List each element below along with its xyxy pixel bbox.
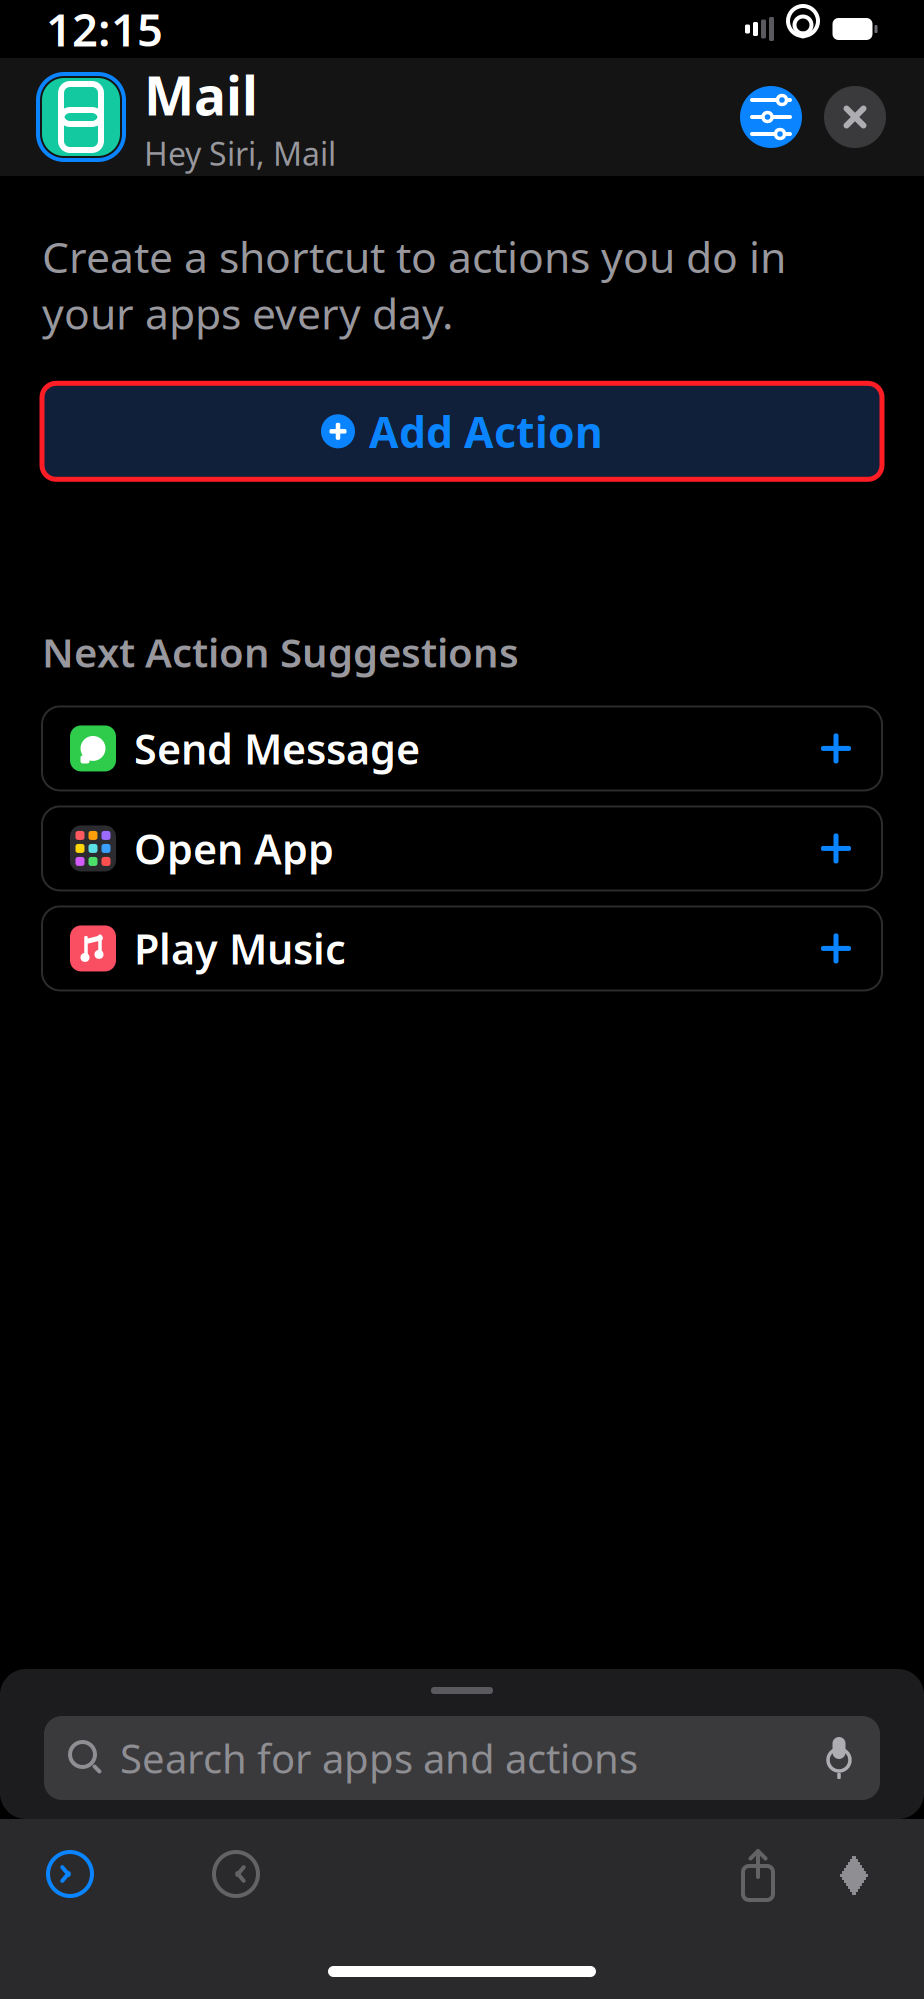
staticText: Play Music (134, 921, 346, 976)
button[interactable]: Share (710, 1839, 806, 1909)
staticText: 12:15 (46, 0, 163, 59)
button[interactable]: Open App (42, 806, 882, 890)
button[interactable]: Search for apps and actions (44, 1716, 880, 1800)
staticText: Hey Siri, Mail (144, 132, 336, 175)
staticText: Mail (144, 59, 258, 130)
button[interactable]: Run shortcut (806, 1839, 902, 1909)
button[interactable]: Shortcut settings (740, 86, 802, 148)
staticText: Send Message (134, 721, 420, 776)
staticText: Search for apps and actions (120, 1731, 638, 1784)
staticText: Next Action Suggestions (42, 625, 519, 678)
staticText: Create a shortcut to actions you do in y… (42, 228, 786, 341)
button[interactable]: Close (824, 86, 886, 148)
button[interactable]: Redo (188, 1839, 284, 1909)
button[interactable]: Play Music (42, 906, 882, 990)
button[interactable]: Undo (22, 1839, 118, 1909)
staticText: Add Action (369, 403, 603, 460)
button[interactable]: Add Action (42, 383, 882, 479)
staticText: Open App (134, 821, 334, 876)
button[interactable]: Send Message (42, 706, 882, 790)
